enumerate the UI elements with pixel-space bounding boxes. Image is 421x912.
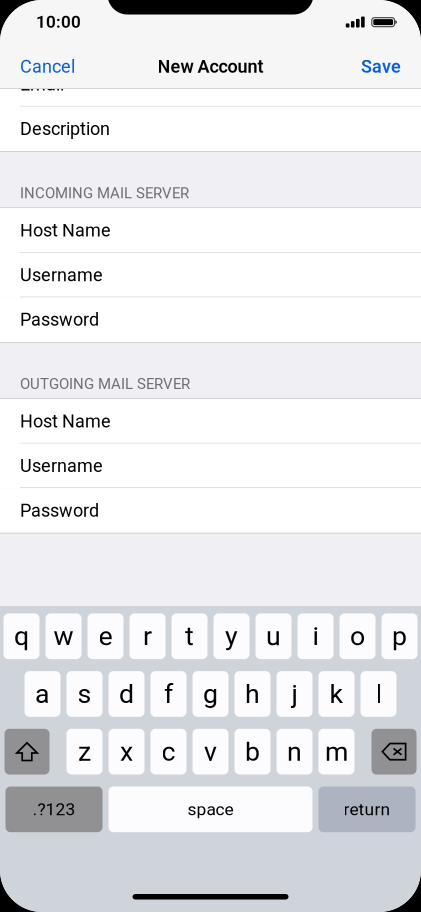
button[interactable]: p [381, 613, 417, 659]
staticText: l [375, 678, 381, 710]
button[interactable]: Save [321, 44, 421, 88]
button[interactable]: Username [0, 253, 421, 297]
button[interactable]: Host Name [0, 208, 421, 253]
button[interactable]: b [234, 729, 270, 774]
button[interactable]: j [276, 671, 312, 717]
button[interactable]: Password [0, 488, 421, 533]
staticText: j [291, 678, 297, 710]
button[interactable]: d [108, 671, 144, 717]
button[interactable]: Shift [4, 729, 49, 774]
staticText: OUTGOING MAIL SERVER [20, 375, 190, 393]
button[interactable]: w [45, 613, 81, 659]
button[interactable]: h [234, 671, 270, 717]
staticText: u [266, 621, 281, 652]
button[interactable]: Username [0, 443, 421, 488]
staticText: Username [20, 264, 103, 286]
button[interactable]: return [318, 786, 415, 832]
staticText: q [14, 621, 29, 652]
staticText: b [245, 736, 260, 767]
staticText: o [350, 621, 365, 652]
button[interactable]: z [66, 729, 102, 774]
button[interactable]: x [108, 729, 144, 774]
staticText: n [287, 736, 302, 767]
button[interactable]: f [150, 671, 186, 717]
staticText: p [392, 621, 407, 652]
button[interactable]: q [3, 613, 39, 659]
staticText: Save [361, 56, 401, 77]
button[interactable]: n [276, 729, 312, 774]
button[interactable]: m [318, 729, 354, 774]
staticText: INCOMING MAIL SERVER [20, 184, 189, 202]
staticText: Username [20, 455, 103, 476]
button[interactable]: l [360, 671, 396, 717]
staticText: s [77, 678, 91, 710]
staticText: 10:00 [36, 12, 81, 32]
button[interactable]: y [213, 613, 249, 659]
staticText: w [53, 621, 73, 652]
button[interactable]: v [192, 729, 228, 774]
staticText: x [120, 736, 133, 767]
button[interactable]: k [318, 671, 354, 717]
staticText: g [203, 678, 218, 710]
button[interactable]: i [297, 613, 333, 659]
staticText: a [35, 678, 50, 710]
staticText: c [161, 736, 175, 767]
staticText: Description [20, 118, 110, 139]
staticText: Password [20, 309, 99, 330]
staticText: Cancel [20, 56, 75, 77]
staticText: v [204, 736, 217, 767]
button[interactable]: o [339, 613, 375, 659]
staticText: return [343, 799, 390, 819]
button[interactable]: Email [0, 62, 421, 107]
button[interactable]: r [129, 613, 165, 659]
button[interactable]: .?123 [5, 786, 102, 832]
button[interactable]: space [108, 786, 312, 832]
button[interactable]: g [192, 671, 228, 717]
staticText: i [312, 621, 318, 652]
staticText: z [78, 736, 91, 767]
staticText: Password [20, 500, 99, 521]
button[interactable]: Description [0, 107, 421, 151]
button[interactable]: Password [0, 297, 421, 342]
staticText: y [225, 621, 238, 652]
staticText: New Account [157, 56, 263, 77]
staticText: h [245, 678, 260, 710]
button[interactable]: Host Name [0, 399, 421, 443]
staticText: t [185, 621, 194, 652]
staticText: space [187, 799, 233, 819]
staticText: Email [20, 74, 64, 95]
button[interactable]: e [87, 613, 123, 659]
button[interactable]: Delete [371, 729, 416, 774]
staticText: e [98, 621, 112, 652]
button[interactable]: a [24, 671, 60, 717]
staticText: r [143, 621, 152, 652]
staticText: m [325, 736, 348, 767]
staticText: k [329, 678, 343, 710]
staticText: Host Name [20, 411, 111, 432]
button[interactable]: t [171, 613, 207, 659]
button[interactable]: s [66, 671, 102, 717]
button[interactable]: c [150, 729, 186, 774]
staticText: Host Name [20, 220, 111, 241]
staticText: f [164, 678, 173, 710]
staticText: .?123 [32, 799, 75, 819]
button[interactable]: Cancel [0, 44, 100, 88]
staticText: d [119, 678, 134, 710]
button[interactable]: u [255, 613, 291, 659]
